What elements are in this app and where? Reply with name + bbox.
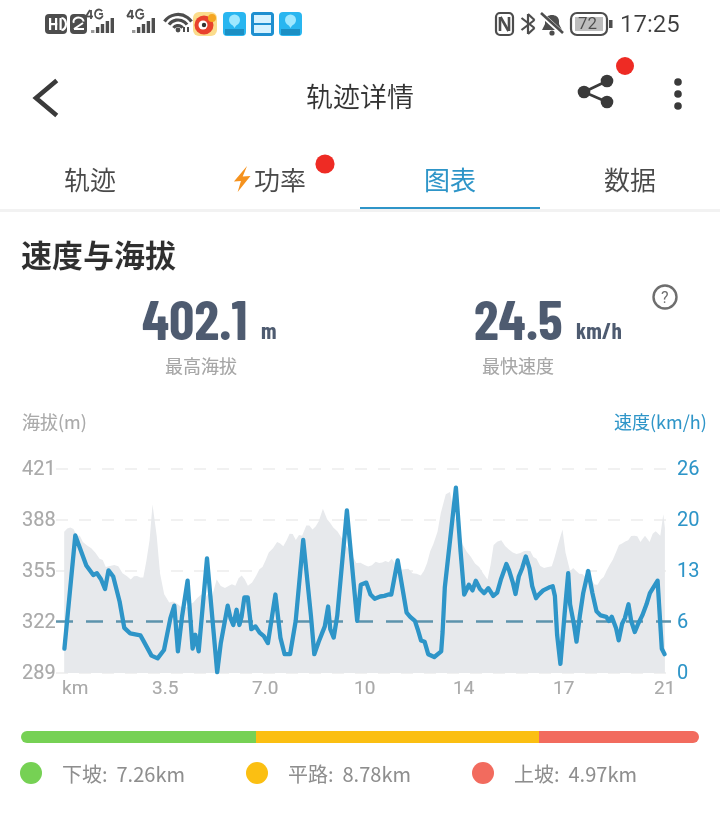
button[interactable]: 上坡: 4.97km bbox=[472, 757, 637, 789]
staticText: 322 bbox=[22, 609, 56, 632]
staticText: 平路: 8.78km bbox=[288, 759, 411, 788]
staticText: 388 bbox=[22, 507, 56, 530]
staticText: 7.0 bbox=[252, 676, 279, 698]
staticText: 轨迹 bbox=[64, 160, 117, 198]
staticText: 速度与海拔 bbox=[21, 231, 176, 276]
staticText: ? bbox=[661, 288, 669, 307]
staticText: 速度(km/h) bbox=[614, 408, 707, 434]
staticText: 402.1 bbox=[142, 284, 248, 351]
staticText: 72 bbox=[578, 13, 598, 33]
staticText: 上坡: 4.97km bbox=[514, 759, 637, 788]
staticText: 图表 bbox=[424, 160, 477, 198]
staticText: 17 bbox=[553, 676, 575, 698]
staticText: 13 bbox=[677, 558, 700, 581]
button[interactable]: 图表 bbox=[360, 144, 540, 212]
button[interactable]: 下坡: 7.26km bbox=[20, 757, 185, 789]
staticText: 海拔(m) bbox=[22, 408, 87, 434]
staticText: 最高海拔 bbox=[165, 352, 237, 378]
staticText: 26 bbox=[677, 456, 700, 479]
staticText: 0 bbox=[677, 660, 689, 683]
button[interactable]: 平路: 8.78km bbox=[246, 757, 411, 789]
staticText: 289 bbox=[22, 660, 56, 683]
staticText: m bbox=[261, 316, 277, 344]
button[interactable]: 轨迹 bbox=[0, 144, 180, 212]
staticText: 17:25 bbox=[620, 10, 680, 38]
staticText: 21 bbox=[654, 676, 676, 698]
staticText: 6 bbox=[677, 609, 689, 632]
button[interactable]: Share bbox=[566, 70, 622, 126]
staticText: 轨迹详情 bbox=[306, 76, 414, 115]
staticText: 20 bbox=[677, 507, 700, 530]
button[interactable]: 功率 bbox=[180, 144, 360, 212]
button[interactable]: 数据 bbox=[540, 144, 720, 212]
staticText: 10 bbox=[354, 676, 376, 698]
staticText: 数据 bbox=[604, 160, 657, 198]
staticText: 14 bbox=[453, 676, 475, 698]
staticText: 下坡: 7.26km bbox=[62, 759, 185, 788]
staticText: 421 bbox=[22, 456, 56, 479]
staticText: km bbox=[62, 676, 89, 698]
button[interactable]: Back bbox=[16, 69, 72, 125]
staticText: 最快速度 bbox=[482, 352, 554, 378]
button[interactable]: Help bbox=[651, 283, 679, 311]
staticText: 24.5 bbox=[474, 284, 563, 351]
staticText: 3.5 bbox=[152, 676, 179, 698]
staticText: 功率 bbox=[254, 160, 307, 198]
staticText: 355 bbox=[22, 558, 56, 581]
staticText: km/h bbox=[576, 316, 622, 344]
button[interactable]: More options bbox=[652, 68, 704, 120]
